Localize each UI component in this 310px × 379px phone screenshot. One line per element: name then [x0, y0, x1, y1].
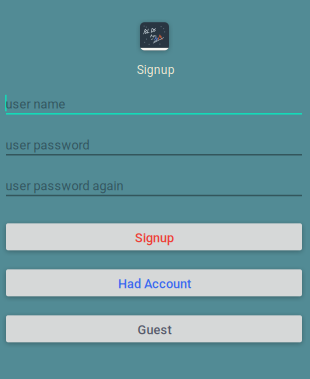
staticText: user password — [5, 138, 89, 153]
staticText: user name — [5, 97, 65, 112]
button[interactable]: user name — [6, 94, 302, 121]
button[interactable]: Signup — [6, 223, 302, 250]
staticText: user password again — [5, 179, 123, 193]
staticText: Signup — [137, 63, 175, 77]
staticText: Guest — [138, 322, 172, 337]
button[interactable]: user password again — [6, 176, 302, 203]
button[interactable]: Had Account — [6, 269, 302, 296]
staticText: Had Account — [118, 276, 191, 291]
staticText: Signup — [135, 230, 174, 245]
button[interactable]: user password — [6, 135, 302, 162]
button[interactable]: Guest — [6, 315, 302, 342]
